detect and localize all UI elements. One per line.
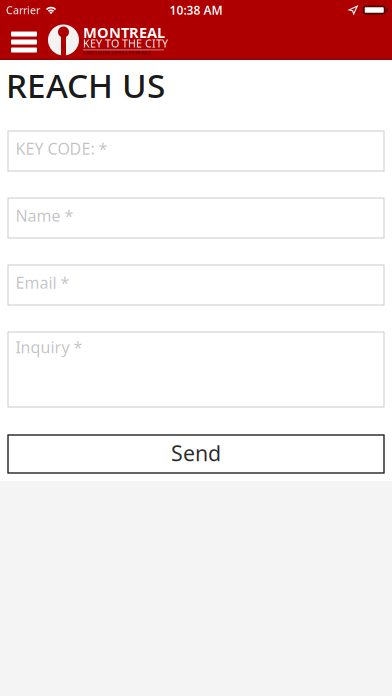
staticText: MONTREAL — [83, 23, 165, 42]
button[interactable]: KEY CODE: * — [8, 131, 384, 171]
button[interactable]: Inquiry — [8, 332, 384, 407]
staticText: Email * — [15, 272, 69, 293]
staticText: Carrier — [6, 3, 40, 17]
button[interactable]: Send — [8, 435, 384, 473]
staticText: KEY TO THE CITY — [83, 36, 168, 50]
staticText: REACH US — [6, 63, 165, 107]
staticText: KEY CODE: * — [15, 138, 107, 159]
staticText: Name * — [15, 205, 73, 226]
button[interactable]: Name * — [8, 198, 384, 238]
staticText: EXCLUSIVE LOYALTY PERKS — [83, 49, 151, 56]
staticText: 10:38 AM — [169, 2, 222, 18]
button[interactable]: Menu — [0, 29, 48, 50]
button[interactable]: Email * — [8, 265, 384, 305]
staticText: Inquiry * — [15, 336, 82, 358]
staticText: Send — [171, 439, 221, 467]
